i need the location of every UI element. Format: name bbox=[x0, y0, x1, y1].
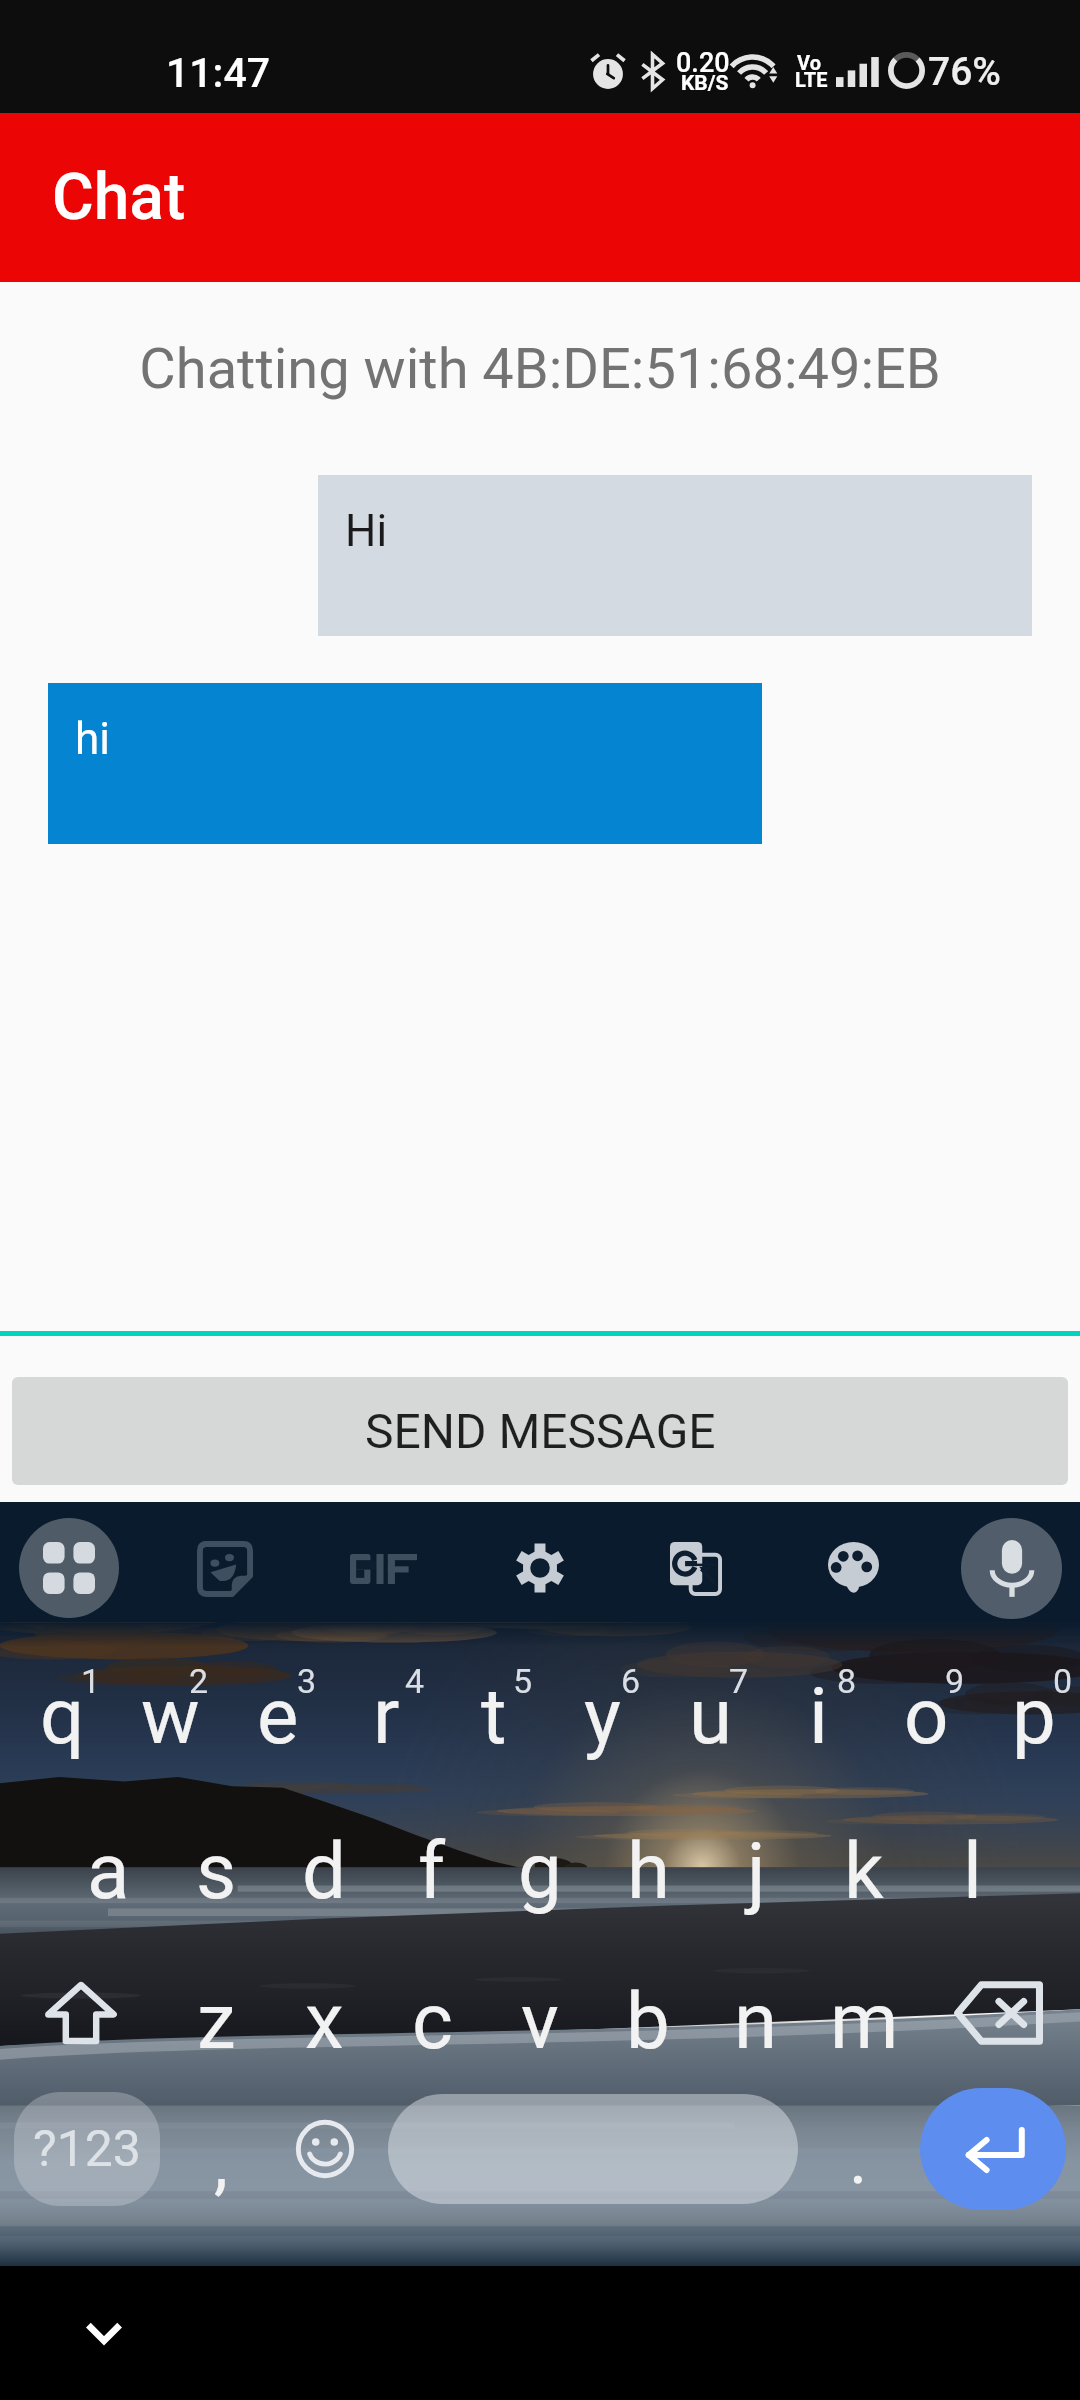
button[interactable]: Theme bbox=[820, 1535, 886, 1601]
button[interactable]: Hi bbox=[318, 475, 1032, 636]
staticText: g bbox=[518, 1826, 562, 1917]
button[interactable]: Hide keyboard bbox=[74, 2303, 134, 2363]
staticText: 11:47 bbox=[166, 49, 271, 97]
staticText: h bbox=[627, 1826, 670, 1917]
staticText: 5 bbox=[513, 1661, 533, 1701]
staticText: w bbox=[141, 1671, 200, 1762]
button[interactable]: . bbox=[818, 2092, 898, 2206]
staticText: Chat bbox=[52, 160, 186, 235]
staticText: hi bbox=[75, 713, 110, 765]
staticText: KB/S bbox=[681, 71, 729, 96]
button[interactable]: e bbox=[224, 1625, 332, 1775]
button[interactable]: GIF bbox=[341, 1532, 425, 1606]
staticText: Hi bbox=[345, 505, 388, 557]
button[interactable]: n bbox=[702, 1930, 810, 2080]
staticText: a bbox=[87, 1826, 130, 1917]
staticText: LTE bbox=[795, 68, 828, 91]
staticText: k bbox=[844, 1826, 884, 1917]
button[interactable]: r bbox=[332, 1625, 440, 1775]
button[interactable]: j bbox=[702, 1780, 810, 1930]
staticText: Chatting with 4B:DE:51:68:49:EB bbox=[0, 336, 1080, 402]
button[interactable]: y bbox=[548, 1625, 656, 1775]
button[interactable]: i bbox=[764, 1625, 872, 1775]
staticText: q bbox=[40, 1671, 85, 1762]
button[interactable]: SEND MESSAGE bbox=[12, 1377, 1068, 1485]
button[interactable]: Emoji bbox=[282, 2092, 368, 2206]
button[interactable]: Settings bbox=[507, 1535, 573, 1601]
staticText: e bbox=[257, 1671, 299, 1762]
button[interactable]: hi bbox=[48, 683, 762, 844]
staticText: m bbox=[830, 1976, 899, 2067]
button[interactable]: d bbox=[270, 1780, 378, 1930]
button[interactable]: f bbox=[378, 1780, 486, 1930]
staticText: b bbox=[626, 1976, 670, 2067]
staticText: z bbox=[197, 1976, 236, 2067]
staticText: 9 bbox=[945, 1661, 965, 1701]
staticText: i bbox=[809, 1671, 828, 1762]
button[interactable]: c bbox=[378, 1930, 486, 2080]
staticText: 1 bbox=[81, 1661, 101, 1701]
button[interactable]: w bbox=[116, 1625, 224, 1775]
button[interactable]: p bbox=[980, 1625, 1080, 1775]
staticText: r bbox=[373, 1671, 400, 1762]
button[interactable]: u bbox=[656, 1625, 764, 1775]
staticText: s bbox=[196, 1826, 237, 1917]
button[interactable]: Stickers bbox=[189, 1533, 261, 1605]
staticText: 76% bbox=[928, 49, 1001, 95]
button[interactable]: m bbox=[810, 1930, 918, 2080]
button[interactable]: Enter bbox=[920, 2088, 1066, 2210]
staticText: 0.20 bbox=[676, 47, 730, 79]
button[interactable]: o bbox=[872, 1625, 980, 1775]
staticText: f bbox=[418, 1826, 446, 1917]
button[interactable]: Translate bbox=[662, 1535, 730, 1603]
button[interactable]: h bbox=[594, 1780, 702, 1930]
button[interactable]: q bbox=[8, 1625, 116, 1775]
staticText: x bbox=[305, 1976, 344, 2067]
button[interactable]: ?123 bbox=[14, 2092, 160, 2206]
button[interactable]: v bbox=[486, 1930, 594, 2080]
button[interactable]: Space bbox=[388, 2094, 798, 2204]
button[interactable]: Shift bbox=[0, 1930, 162, 2080]
staticText: c bbox=[412, 1976, 453, 2067]
staticText: , bbox=[214, 2122, 228, 2204]
staticText: 7 bbox=[729, 1661, 749, 1701]
staticText: ?123 bbox=[33, 2120, 141, 2179]
staticText: 8 bbox=[837, 1661, 857, 1701]
staticText: 6 bbox=[621, 1661, 641, 1701]
staticText: v bbox=[521, 1976, 559, 2067]
staticText: o bbox=[904, 1671, 949, 1762]
staticText: 4 bbox=[405, 1661, 425, 1701]
button[interactable]: , bbox=[178, 2092, 264, 2206]
staticText: 2 bbox=[189, 1661, 209, 1701]
staticText: Vo bbox=[797, 51, 821, 74]
button[interactable]: t bbox=[440, 1625, 548, 1775]
staticText: n bbox=[734, 1976, 778, 2067]
button[interactable]: k bbox=[810, 1780, 918, 1930]
button[interactable]: s bbox=[162, 1780, 270, 1930]
staticText: y bbox=[584, 1671, 621, 1762]
staticText: SEND MESSAGE bbox=[365, 1403, 716, 1459]
staticText: 3 bbox=[297, 1661, 317, 1701]
staticText: . bbox=[849, 2118, 868, 2200]
button[interactable]: x bbox=[270, 1930, 378, 2080]
button[interactable]: Voice input bbox=[961, 1518, 1062, 1619]
button[interactable]: z bbox=[162, 1930, 270, 2080]
staticText: u bbox=[689, 1671, 732, 1762]
staticText: p bbox=[1012, 1671, 1056, 1762]
staticText: l bbox=[963, 1826, 982, 1917]
staticText: j bbox=[747, 1826, 766, 1917]
button[interactable]: Backspace bbox=[918, 1930, 1080, 2080]
button[interactable]: b bbox=[594, 1930, 702, 2080]
button[interactable]: a bbox=[54, 1780, 162, 1930]
staticText: t bbox=[481, 1671, 507, 1762]
button[interactable]: g bbox=[486, 1780, 594, 1930]
staticText: 0 bbox=[1053, 1661, 1073, 1701]
button[interactable]: l bbox=[918, 1780, 1026, 1930]
button[interactable]: Symbols bbox=[19, 1518, 119, 1618]
staticText: d bbox=[302, 1826, 346, 1917]
